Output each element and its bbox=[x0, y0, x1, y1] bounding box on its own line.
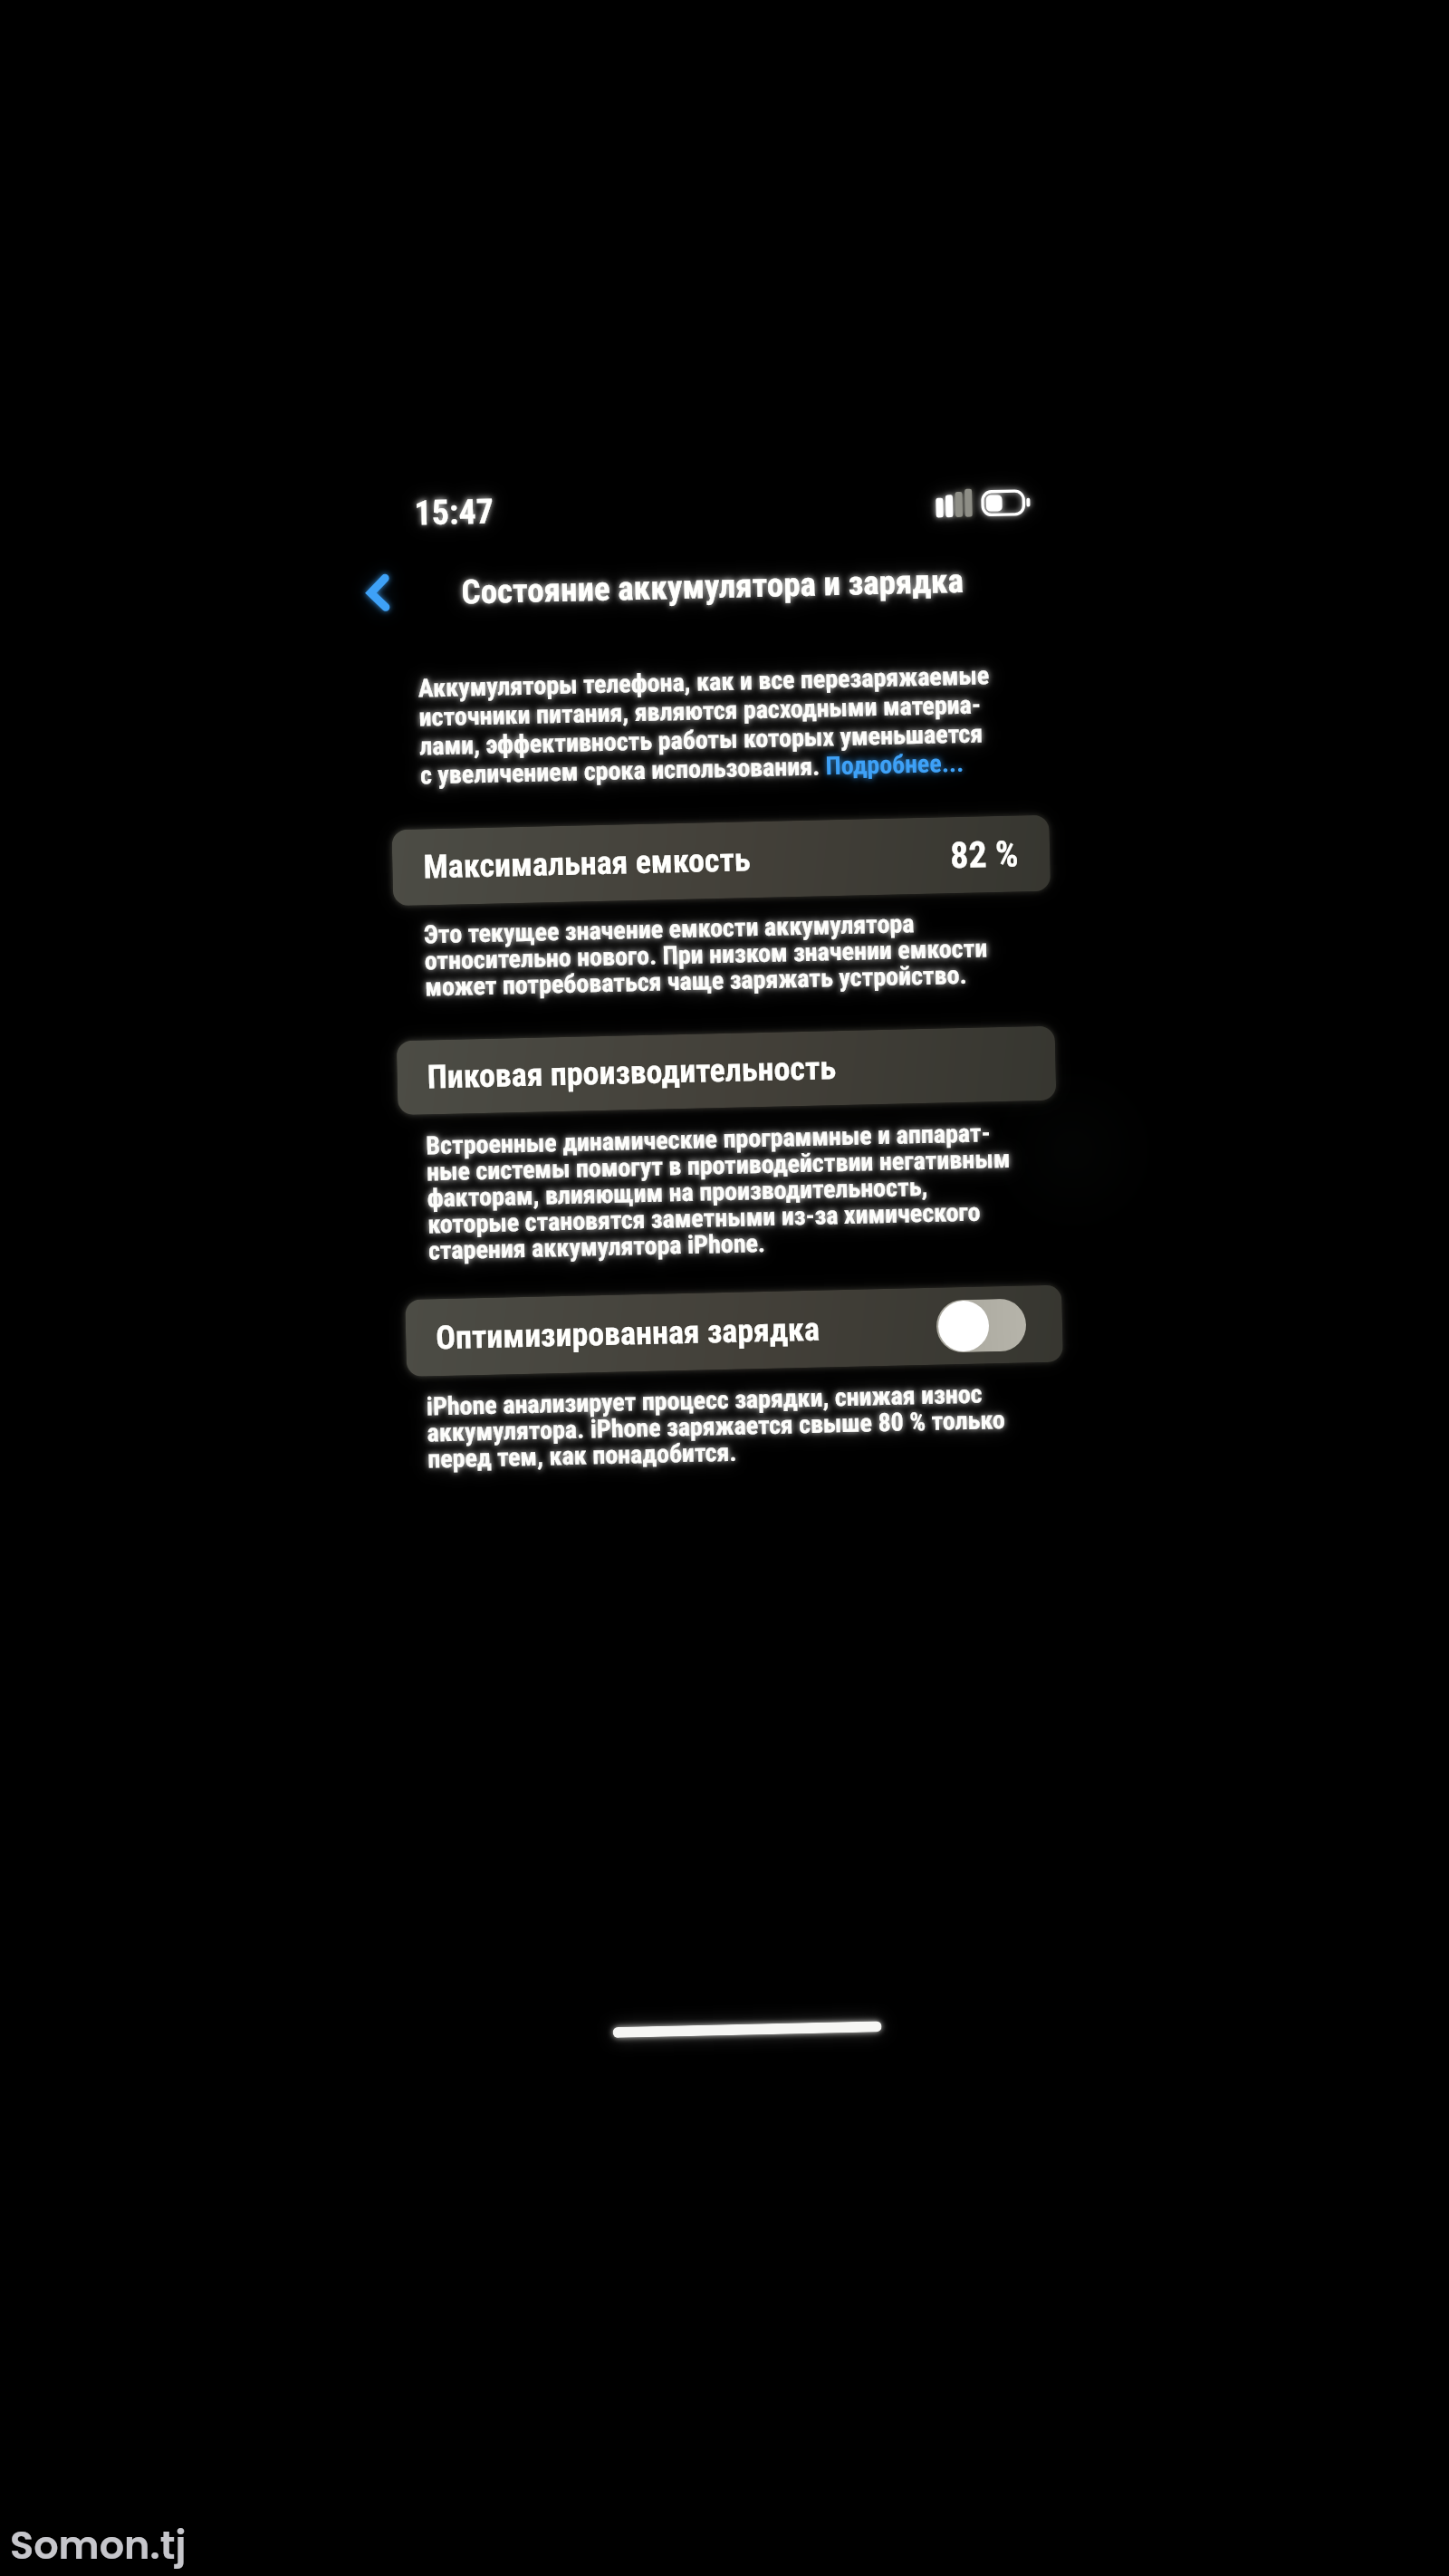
button[interactable]: Пиковая производительность bbox=[396, 1026, 1056, 1115]
button[interactable]: Подробнее bbox=[733, 746, 871, 780]
staticText: Аккумуляторы телефона, как и все перезар… bbox=[418, 660, 992, 790]
staticText: iPhone анализирует процесс зарядки, сниж… bbox=[426, 1379, 1007, 1474]
button[interactable]: Optimized battery charging bbox=[936, 1298, 1027, 1353]
staticText: Пиковая производительность bbox=[427, 1049, 837, 1096]
button[interactable]: Пиковая производительность bbox=[396, 1026, 1056, 1115]
button[interactable]: Максимальная емкость bbox=[392, 815, 1051, 906]
staticText: iPhone анализирует процесс зарядки, сниж… bbox=[426, 1379, 1007, 1474]
staticText: 15:47 bbox=[414, 491, 494, 534]
staticText: Аккумуляторы телефона, как и все перезар… bbox=[418, 660, 992, 790]
staticText: Максимальная емкость bbox=[423, 841, 751, 886]
staticText: Встроенные динамические программные и ап… bbox=[426, 1118, 1013, 1266]
staticText: Пиковая производительность bbox=[427, 1049, 837, 1096]
button[interactable]: Optimized battery charging bbox=[936, 1298, 1027, 1353]
staticText: Somon.tj bbox=[10, 2518, 187, 2572]
staticText: Максимальная емкость bbox=[423, 841, 751, 886]
button[interactable]: Оптимизированная зарядка bbox=[405, 1285, 1063, 1377]
button[interactable]: Максимальная емкость bbox=[392, 815, 1051, 906]
staticText: 15:47 bbox=[414, 491, 494, 534]
staticText: Это текущее значение емкости аккумулятор… bbox=[424, 907, 989, 1002]
staticText: 82 % bbox=[950, 833, 1019, 877]
button[interactable]: Back bbox=[349, 558, 407, 628]
staticText: Состояние аккумулятора и зарядка bbox=[461, 561, 964, 612]
button[interactable]: Подробнее bbox=[733, 746, 871, 780]
button[interactable]: Оптимизированная зарядка bbox=[405, 1285, 1063, 1377]
staticText: Состояние аккумулятора и зарядка bbox=[461, 561, 964, 612]
button[interactable]: Подробнее bbox=[733, 746, 871, 780]
staticText: Пиковая производительность bbox=[427, 1049, 837, 1096]
staticText: 82 % bbox=[950, 833, 1019, 877]
button[interactable]: Optimized battery charging bbox=[936, 1298, 1027, 1353]
staticText: Аккумуляторы телефона, как и все перезар… bbox=[418, 660, 992, 790]
staticText: Встроенные динамические программные и ап… bbox=[426, 1118, 1013, 1266]
staticText: Оптимизированная зарядка bbox=[435, 1310, 820, 1357]
staticText: Оптимизированная зарядка bbox=[435, 1310, 820, 1357]
button[interactable]: Back bbox=[349, 558, 407, 628]
staticText: 82 % bbox=[950, 833, 1019, 877]
staticText: Встроенные динамические программные и ап… bbox=[426, 1118, 1013, 1266]
staticText: Максимальная емкость bbox=[423, 841, 751, 886]
staticText: Это текущее значение емкости аккумулятор… bbox=[424, 907, 989, 1002]
staticText: Состояние аккумулятора и зарядка bbox=[461, 561, 964, 612]
staticText: Оптимизированная зарядка bbox=[435, 1310, 820, 1357]
button[interactable]: Оптимизированная зарядка bbox=[405, 1285, 1063, 1377]
staticText: Это текущее значение емкости аккумулятор… bbox=[424, 907, 989, 1002]
button[interactable]: Back bbox=[349, 558, 407, 628]
button[interactable]: Максимальная емкость bbox=[392, 815, 1051, 906]
button[interactable]: Пиковая производительность bbox=[396, 1026, 1056, 1115]
staticText: 15:47 bbox=[414, 491, 494, 534]
staticText: iPhone анализирует процесс зарядки, сниж… bbox=[426, 1379, 1007, 1474]
